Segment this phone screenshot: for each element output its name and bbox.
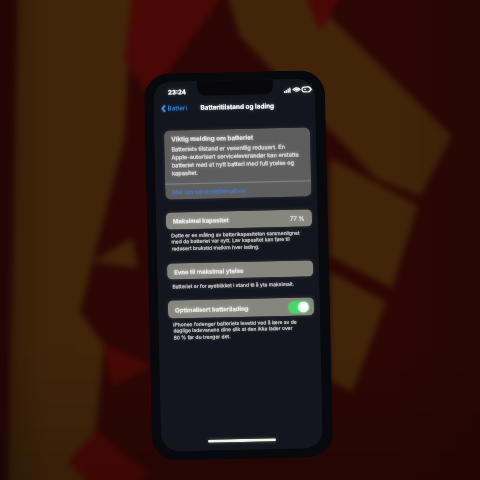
- staticText: iPhonen forlenger batteriets levetid ved…: [173, 318, 305, 340]
- staticText: Batteritilstand og lading: [200, 102, 274, 112]
- button[interactable]: Mer om servicealternativer…: [165, 181, 311, 200]
- other: Optimalisert batterilading på: [288, 300, 310, 314]
- button[interactable]: Evne til maksimal ytelse: [167, 260, 313, 280]
- staticText: Dette er en måling av batterikapasiteten…: [171, 229, 303, 251]
- button[interactable]: Batteri: [158, 102, 191, 115]
- staticText: Maksimal kapasitet: [173, 216, 229, 224]
- staticText: Evne til maksimal ytelse: [174, 267, 244, 275]
- staticText: Viktig melding om batteriet: [171, 134, 253, 143]
- staticText: Batteri: [167, 104, 187, 113]
- staticText: 23:24: [168, 88, 186, 96]
- other: Optimalisert batterilading på: [288, 300, 310, 314]
- staticText: Batteriets tilstand er vesentlig reduser…: [171, 142, 305, 176]
- staticText: 77 %: [290, 214, 305, 222]
- button[interactable]: Maksimal kapasitet: [166, 209, 312, 230]
- staticText: Batteriets tilstand er vesentlig reduser…: [171, 142, 305, 176]
- staticText: Batteri: [167, 104, 187, 113]
- button[interactable]: Maksimal kapasitet: [166, 209, 312, 230]
- staticText: 23:24: [168, 88, 186, 96]
- staticText: Mer om servicealternativer…: [172, 187, 251, 195]
- staticText: Optimalisert batterilading: [175, 305, 249, 313]
- button[interactable]: Evne til maksimal ytelse: [167, 260, 313, 280]
- button[interactable]: Optimalisert batterilading: [168, 297, 314, 319]
- staticText: iPhonen forlenger batteriets levetid ved…: [173, 318, 305, 340]
- staticText: Batteriet er for øyeblikket i stand til …: [172, 281, 294, 289]
- staticText: Maksimal kapasitet: [173, 216, 229, 224]
- staticText: Batteriet er for øyeblikket i stand til …: [172, 281, 294, 289]
- staticText: Evne til maksimal ytelse: [174, 267, 244, 275]
- staticText: Mer om servicealternativer…: [172, 187, 251, 195]
- button[interactable]: Batteri: [158, 102, 191, 115]
- staticText: Batteritilstand og lading: [200, 102, 274, 112]
- button[interactable]: Optimalisert batterilading: [168, 297, 314, 319]
- staticText: Viktig melding om batteriet: [171, 134, 253, 143]
- staticText: Optimalisert batterilading: [175, 305, 249, 313]
- staticText: 77 %: [290, 214, 305, 222]
- button[interactable]: Mer om servicealternativer…: [165, 181, 311, 200]
- staticText: Dette er en måling av batterikapasiteten…: [171, 229, 303, 251]
